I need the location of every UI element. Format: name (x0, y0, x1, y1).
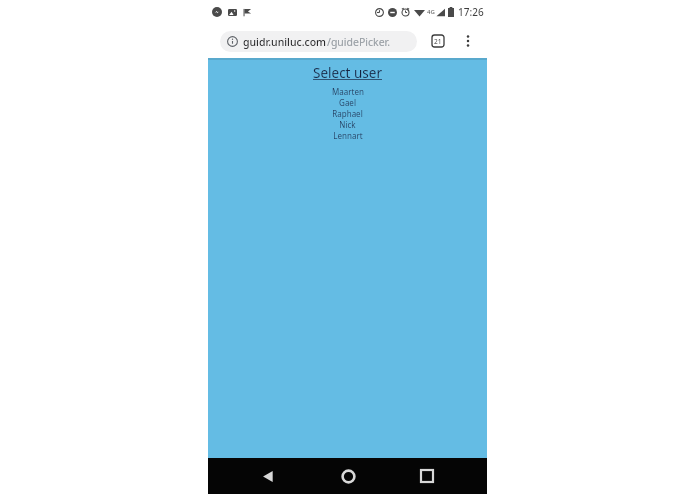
button[interactable]: Recent apps (407, 458, 447, 494)
staticText: Nick (339, 119, 356, 130)
staticText: guidr.uniluc.com (243, 35, 327, 49)
button[interactable]: Nick (208, 119, 487, 130)
button[interactable]: Back (248, 458, 288, 494)
staticText: Raphael (332, 108, 363, 119)
button[interactable]: Gael (208, 97, 487, 108)
button[interactable]: Select user (313, 64, 382, 82)
staticText: 21 (434, 37, 442, 46)
staticText: Maarten (332, 86, 364, 97)
staticText: Gael (339, 97, 356, 108)
staticText: 17:26 (458, 5, 484, 19)
button[interactable]: Lennart (208, 130, 487, 141)
button[interactable]: guidr.uniluc.com (220, 31, 417, 52)
button[interactable]: More options (457, 30, 479, 52)
staticText: Lennart (333, 130, 363, 141)
staticText: Select user (313, 64, 382, 82)
staticText: /guidePicker. (327, 35, 391, 49)
button[interactable]: Raphael (208, 108, 487, 119)
button[interactable]: Tabs, 21 open (427, 30, 449, 52)
button[interactable]: Maarten (208, 86, 487, 97)
staticText: 4G (427, 8, 435, 16)
button[interactable]: Home (328, 458, 368, 494)
